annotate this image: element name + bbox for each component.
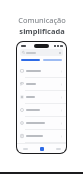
other: Abrir (60, 135, 63, 138)
button[interactable]: Ícone (17, 65, 66, 77)
button[interactable]: Ícone (17, 91, 66, 103)
button[interactable]: Ícone (17, 78, 66, 90)
button[interactable]: Ícone (17, 104, 66, 116)
button[interactable]: Ícone (17, 117, 66, 129)
button[interactable]: Perfil (50, 144, 66, 153)
button[interactable] (20, 56, 41, 64)
other: Abrir (60, 70, 63, 73)
other: Abrir (60, 83, 63, 86)
other: Ícone (20, 108, 24, 112)
staticText: simplificada (19, 26, 65, 36)
other: Abrir (60, 96, 63, 99)
button[interactable] (41, 56, 63, 64)
other: Ícone (20, 121, 24, 125)
other: Ícone (20, 134, 24, 138)
button[interactable]: Mensagens (34, 144, 50, 153)
button[interactable] (20, 49, 63, 56)
button[interactable]: Início (17, 144, 34, 153)
other: Abrir (60, 122, 63, 125)
staticText: Comunicação (18, 15, 66, 25)
button[interactable]: Ícone (17, 130, 66, 142)
other: Ícone (20, 69, 24, 73)
other: Ícone (20, 95, 24, 99)
other: Ícone (20, 82, 24, 86)
other: Abrir (60, 109, 63, 112)
